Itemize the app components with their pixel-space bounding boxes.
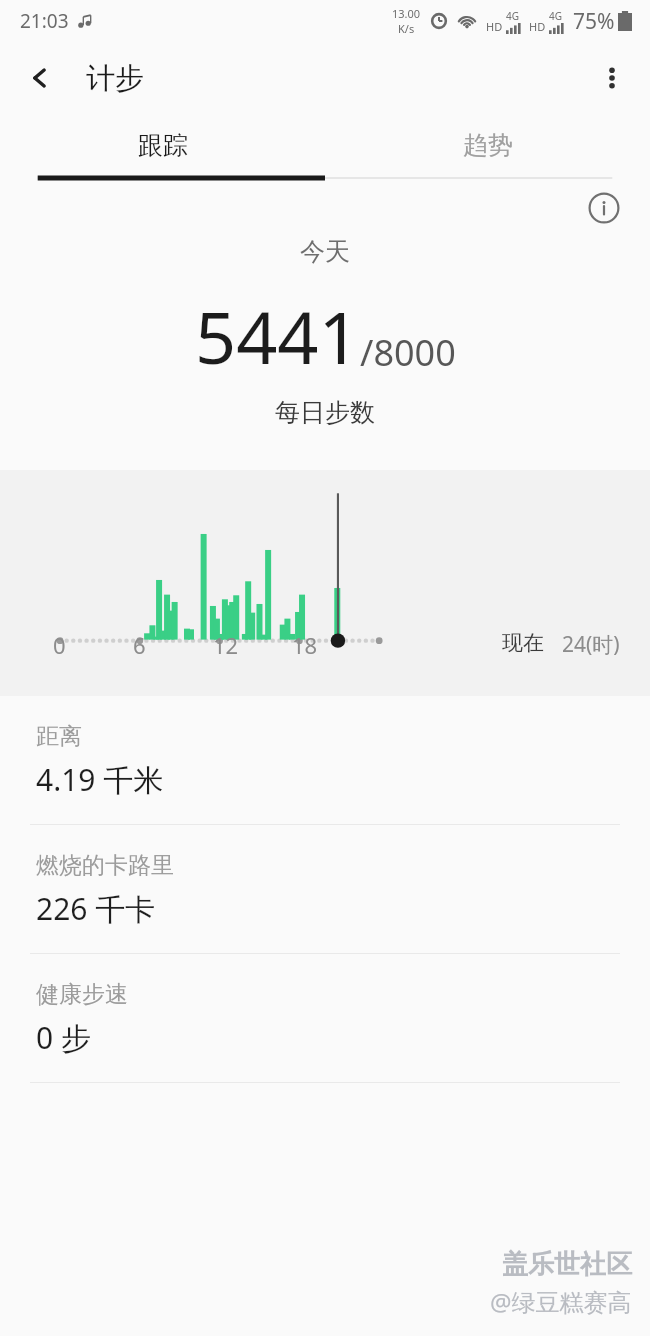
staticText: 226 千卡 xyxy=(36,888,156,929)
staticText: 4.19 千米 xyxy=(36,759,164,800)
staticText: 4G xyxy=(549,9,562,23)
staticText: 12 xyxy=(213,630,239,660)
staticText: 0 步 xyxy=(36,1017,91,1058)
staticText: 4G xyxy=(506,9,519,23)
staticText: 13.00 xyxy=(392,6,421,21)
staticText: /8000 xyxy=(360,328,456,377)
button[interactable]: 距离 xyxy=(0,696,650,825)
staticText: 每日步数 xyxy=(275,397,375,428)
staticText: 跟踪 xyxy=(138,130,188,161)
staticText: 现在 xyxy=(502,630,544,656)
staticText: HD xyxy=(529,19,546,34)
staticText: 盖乐世社区 xyxy=(502,1248,632,1281)
staticText: 21:03 xyxy=(20,8,69,34)
staticText: HD xyxy=(486,19,503,34)
button[interactable]: Information xyxy=(584,188,624,228)
staticText: 健康步速 xyxy=(36,980,128,1009)
button[interactable]: More options xyxy=(586,52,638,104)
staticText: 燃烧的卡路里 xyxy=(36,851,174,880)
button[interactable]: 跟踪 xyxy=(0,114,325,176)
staticText: @绿豆糕赛高 xyxy=(490,1285,632,1318)
button[interactable]: Back xyxy=(14,52,66,104)
staticText: 计步 xyxy=(86,60,144,97)
staticText: 距离 xyxy=(36,722,82,751)
button[interactable]: 健康步速 xyxy=(0,954,650,1083)
staticText: 今天 xyxy=(300,236,350,267)
button[interactable]: 趋势 xyxy=(325,114,650,176)
staticText: 5441 xyxy=(195,287,360,385)
staticText: 6 xyxy=(133,630,146,660)
staticText: 75% xyxy=(573,7,615,36)
staticText: 趋势 xyxy=(463,130,513,161)
staticText: 0 xyxy=(53,630,66,660)
staticText: 24(时) xyxy=(562,630,620,659)
staticText: K/s xyxy=(398,21,415,36)
button[interactable]: 燃烧的卡路里 xyxy=(0,825,650,954)
staticText: 18 xyxy=(292,630,318,660)
